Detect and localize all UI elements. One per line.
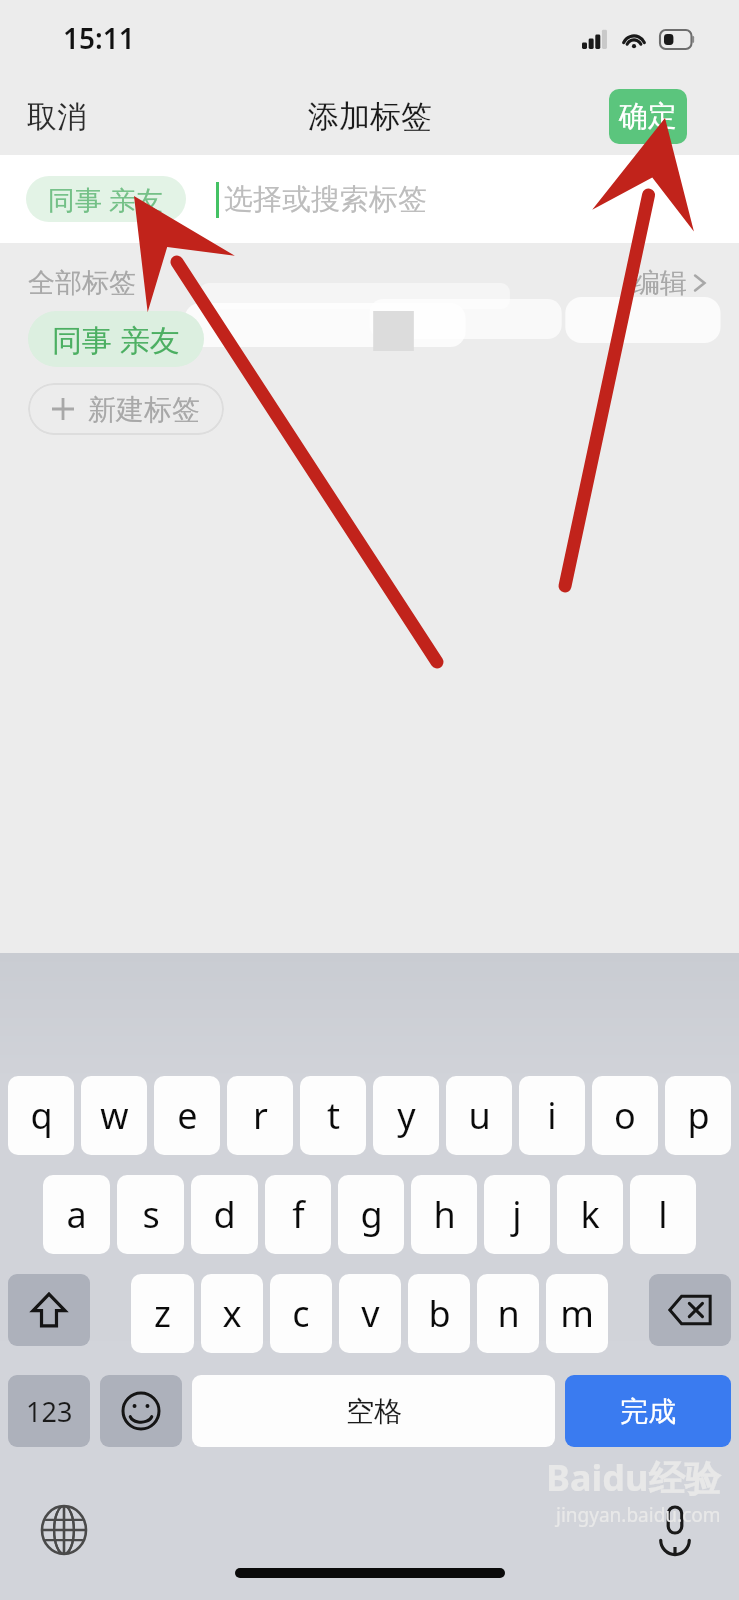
- button[interactable]: k: [557, 1175, 623, 1254]
- staticText: k: [580, 1190, 600, 1239]
- button[interactable]: Shift: [8, 1274, 90, 1346]
- staticText: 编辑: [633, 266, 687, 300]
- button[interactable]: b: [408, 1274, 470, 1353]
- button[interactable]: l: [630, 1175, 696, 1254]
- button[interactable]: c: [270, 1274, 332, 1353]
- staticText: v: [361, 1289, 380, 1338]
- staticText: b: [428, 1289, 451, 1338]
- staticText: p: [687, 1091, 710, 1140]
- button[interactable]: Backspace: [649, 1274, 731, 1346]
- button[interactable]: j: [484, 1175, 550, 1254]
- button[interactable]: Voice input: [647, 1502, 703, 1558]
- button[interactable]: v: [339, 1274, 401, 1353]
- staticText: j: [512, 1190, 522, 1239]
- staticText: jingyan.baidu.com: [556, 1502, 721, 1528]
- staticText: m: [560, 1289, 594, 1338]
- staticText: 选择或搜索标签: [224, 181, 427, 218]
- button[interactable]: y: [373, 1076, 439, 1155]
- button[interactable]: d: [191, 1175, 258, 1254]
- button[interactable]: p: [665, 1076, 731, 1155]
- staticText: 空格: [346, 1394, 402, 1429]
- staticText: 123: [26, 1393, 73, 1430]
- staticText: d: [213, 1190, 236, 1239]
- button[interactable]: s: [117, 1175, 184, 1254]
- button[interactable]: Switch language: [36, 1502, 92, 1558]
- staticText: w: [100, 1091, 129, 1140]
- button[interactable]: 空格: [192, 1375, 555, 1447]
- button[interactable]: 编辑: [629, 262, 711, 304]
- staticText: g: [360, 1190, 383, 1239]
- button[interactable]: Emoji: [100, 1375, 182, 1447]
- button[interactable]: e: [154, 1076, 220, 1155]
- button[interactable]: 确定: [609, 89, 687, 144]
- button[interactable]: u: [446, 1076, 512, 1155]
- staticText: 完成: [620, 1394, 676, 1429]
- button[interactable]: x: [201, 1274, 263, 1353]
- staticText: h: [433, 1190, 456, 1239]
- staticText: u: [468, 1091, 491, 1140]
- button[interactable]: 同事 亲友: [28, 311, 204, 367]
- button[interactable]: f: [265, 1175, 331, 1254]
- staticText: r: [253, 1091, 268, 1140]
- button[interactable]: g: [338, 1175, 404, 1254]
- button[interactable]: 同事 亲友: [26, 176, 186, 222]
- button[interactable]: n: [477, 1274, 539, 1353]
- button[interactable]: m: [546, 1274, 608, 1353]
- staticText: n: [497, 1289, 520, 1338]
- staticText: 15:11: [63, 19, 135, 57]
- staticText: z: [154, 1289, 171, 1338]
- button[interactable]: i: [519, 1076, 585, 1155]
- staticText: a: [66, 1190, 87, 1239]
- staticText: o: [614, 1091, 636, 1140]
- button[interactable]: 123: [8, 1375, 90, 1447]
- staticText: Baidu经验: [546, 1453, 721, 1502]
- staticText: 确定: [619, 98, 677, 135]
- staticText: t: [327, 1091, 340, 1140]
- staticText: 取消: [27, 98, 87, 136]
- staticText: 添加标签: [308, 97, 432, 136]
- staticText: e: [177, 1091, 198, 1140]
- staticText: q: [30, 1091, 53, 1140]
- staticText: 同事 亲友: [52, 319, 180, 360]
- staticText: s: [142, 1190, 160, 1239]
- staticText: i: [547, 1091, 557, 1140]
- staticText: c: [292, 1289, 310, 1338]
- staticText: 新建标签: [88, 392, 200, 427]
- staticText: x: [222, 1289, 242, 1338]
- staticText: 全部标签: [28, 266, 136, 300]
- button[interactable]: t: [300, 1076, 366, 1155]
- button[interactable]: 取消: [0, 90, 101, 144]
- button[interactable]: o: [592, 1076, 658, 1155]
- staticText: y: [397, 1091, 416, 1140]
- button[interactable]: 新建标签: [28, 383, 224, 435]
- staticText: 同事 亲友: [48, 181, 164, 218]
- staticText: f: [292, 1190, 305, 1239]
- button[interactable]: z: [131, 1274, 194, 1353]
- button[interactable]: q: [8, 1076, 74, 1155]
- staticText: l: [658, 1190, 668, 1239]
- button[interactable]: w: [81, 1076, 147, 1155]
- button[interactable]: r: [227, 1076, 293, 1155]
- button[interactable]: 完成: [565, 1375, 731, 1447]
- button[interactable]: a: [43, 1175, 110, 1254]
- button[interactable]: h: [411, 1175, 477, 1254]
